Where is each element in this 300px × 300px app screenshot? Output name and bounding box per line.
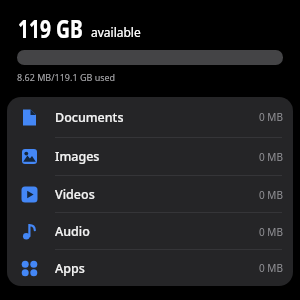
staticText: Documents <box>55 109 124 126</box>
staticText: Images <box>55 148 100 165</box>
staticText: Videos <box>55 186 95 203</box>
button[interactable]: Images <box>7 137 293 176</box>
staticText: 0 MB <box>259 261 283 275</box>
staticText: available <box>91 24 141 40</box>
button[interactable]: Audio <box>7 213 293 250</box>
staticText: 0 MB <box>259 110 283 124</box>
staticText: 0 MB <box>259 188 283 202</box>
staticText: 8.62 MB/119.1 GB used <box>17 71 116 83</box>
staticText: Audio <box>55 223 90 240</box>
staticText: 119 GB <box>18 11 83 45</box>
button[interactable]: Documents <box>7 97 293 137</box>
staticText: Apps <box>55 260 85 277</box>
staticText: 0 MB <box>259 225 283 239</box>
button[interactable]: Apps <box>7 250 293 286</box>
staticText: 0 MB <box>259 150 283 164</box>
button[interactable]: Videos <box>7 176 293 213</box>
